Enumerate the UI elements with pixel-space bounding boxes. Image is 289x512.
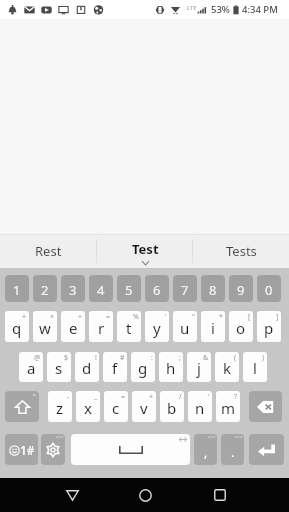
button[interactable]: o [229, 311, 253, 342]
staticText: + [22, 312, 27, 322]
staticText: ; [179, 353, 181, 363]
staticText: [ [248, 312, 251, 322]
staticText: e [69, 318, 78, 338]
button[interactable]: s [47, 352, 71, 382]
staticText: u [180, 318, 190, 338]
staticText: m [221, 398, 236, 418]
button[interactable]: 4 [89, 275, 113, 302]
staticText: w [39, 318, 51, 338]
staticText: g [138, 358, 148, 378]
button[interactable]: 6 [145, 275, 169, 302]
staticText: 6 [153, 281, 161, 299]
staticText: 8 [209, 281, 217, 299]
staticText: _ [94, 392, 98, 402]
staticText: l [253, 358, 257, 378]
button[interactable]: h [159, 352, 183, 382]
staticText: Rest [35, 242, 62, 260]
staticText: t [126, 318, 132, 338]
staticText: o [236, 318, 246, 338]
button[interactable]: , [194, 434, 217, 465]
button[interactable]: 5 [117, 275, 141, 302]
button[interactable]: r [89, 311, 113, 342]
staticText: x [84, 398, 92, 418]
staticText: 5 [125, 281, 133, 299]
button[interactable]: l [243, 352, 267, 382]
button[interactable]: j [187, 352, 211, 382]
button[interactable]: x [76, 391, 100, 422]
button[interactable]: b [160, 391, 184, 422]
button[interactable]: Shift [5, 391, 39, 422]
button[interactable]: i [201, 311, 225, 342]
staticText: : [151, 353, 153, 363]
button[interactable]: . [221, 434, 244, 465]
staticText: q [12, 318, 22, 338]
staticText: h [166, 358, 176, 378]
button[interactable]: g [131, 352, 155, 382]
button[interactable]: m [216, 391, 240, 422]
button[interactable]: Back [48, 478, 96, 512]
button[interactable]: p [257, 311, 281, 342]
staticText: = [106, 312, 111, 322]
button[interactable]: e [61, 311, 85, 342]
button[interactable]: y [145, 311, 169, 342]
button[interactable]: n [188, 391, 212, 422]
button[interactable]: Backspace [249, 391, 282, 422]
staticText: / [179, 392, 182, 402]
staticText: n [195, 398, 205, 418]
staticText: 53% [211, 3, 230, 16]
button[interactable]: 1 [5, 275, 29, 302]
staticText: j [197, 358, 201, 378]
staticText: Test [132, 240, 159, 258]
staticText: ] [276, 312, 279, 322]
staticText: & [203, 353, 209, 363]
button[interactable]: f [103, 352, 127, 382]
button[interactable]: Emoji and symbols [5, 434, 38, 465]
staticText: # [120, 353, 125, 363]
staticText: z [56, 398, 64, 418]
staticText: " [192, 312, 195, 322]
button[interactable]: q [5, 311, 29, 342]
staticText: 2 [41, 281, 49, 299]
button[interactable]: 8 [201, 275, 225, 302]
button[interactable]: 0 [257, 275, 281, 302]
button[interactable]: Rest [0, 234, 97, 268]
staticText: × [50, 312, 55, 322]
button[interactable]: Settings [41, 434, 65, 465]
button[interactable]: Enter [249, 434, 284, 465]
staticText: 1# [20, 442, 35, 458]
button[interactable]: 9 [229, 275, 253, 302]
button[interactable]: 7 [173, 275, 197, 302]
staticText: ° [33, 392, 36, 400]
button[interactable]: 3 [61, 275, 85, 302]
staticText: ? [234, 392, 238, 402]
staticText: a [27, 358, 36, 378]
staticText: ' [165, 312, 167, 322]
button[interactable]: Space [71, 434, 190, 465]
button[interactable]: Tests [193, 234, 289, 268]
button[interactable]: d [75, 352, 99, 382]
staticText: LTE [187, 4, 197, 11]
staticText: % [133, 312, 139, 322]
staticText: b [167, 398, 177, 418]
button[interactable]: Recent apps [196, 478, 244, 512]
staticText: y [153, 318, 161, 338]
button[interactable]: 2 [33, 275, 57, 302]
staticText: = [121, 392, 126, 402]
staticText: 4:34 PM [242, 3, 278, 16]
button[interactable]: z [48, 391, 72, 422]
button[interactable]: u [173, 311, 197, 342]
button[interactable]: a [19, 352, 43, 382]
staticText: ( [234, 353, 237, 363]
staticText: - [67, 392, 70, 402]
button[interactable]: Home [121, 478, 169, 512]
staticText: ) [262, 353, 265, 363]
button[interactable]: k [215, 352, 239, 382]
button[interactable]: w [33, 311, 57, 342]
staticText: 3 [69, 281, 77, 299]
button[interactable]: Test [97, 234, 193, 268]
button[interactable]: v [132, 391, 156, 422]
staticText: Tests [226, 242, 257, 260]
staticText: . [231, 444, 235, 460]
button[interactable]: c [104, 391, 128, 422]
button[interactable]: t [117, 311, 141, 342]
